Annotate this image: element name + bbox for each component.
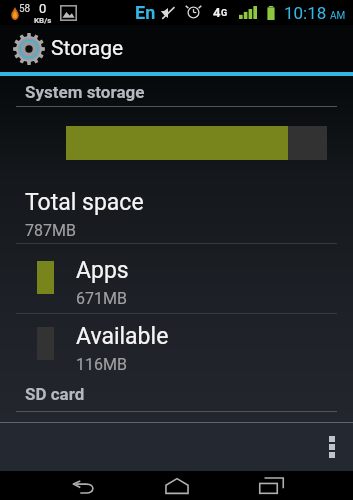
staticText: 787MB	[25, 221, 76, 240]
staticText: Apps	[76, 257, 129, 284]
staticText: Storage	[51, 36, 124, 61]
button[interactable]: Settings	[0, 25, 353, 72]
button[interactable]: Available	[0, 310, 353, 380]
staticText: 4	[213, 5, 221, 20]
staticText: SD card	[25, 384, 85, 404]
button[interactable]: More options	[311, 423, 353, 471]
staticText: AM	[330, 10, 346, 22]
staticText: Total space	[25, 189, 144, 216]
button[interactable]: Recent apps	[239, 471, 303, 500]
staticText: KB/s	[34, 16, 52, 25]
staticText: En	[135, 2, 156, 23]
staticText: G	[221, 8, 228, 19]
staticText: Available	[76, 323, 169, 350]
staticText: 0	[39, 1, 47, 16]
staticText: 58	[19, 3, 31, 15]
button[interactable]: Apps	[0, 244, 353, 314]
button[interactable]: Back	[51, 471, 115, 500]
staticText: 116MB	[76, 355, 127, 374]
button[interactable]: Total space	[0, 184, 353, 243]
staticText: System storage	[25, 82, 145, 102]
staticText: 10:18	[284, 3, 327, 23]
button[interactable]: Home	[145, 471, 209, 500]
other: Settings	[13, 33, 45, 65]
staticText: 671MB	[76, 289, 127, 308]
